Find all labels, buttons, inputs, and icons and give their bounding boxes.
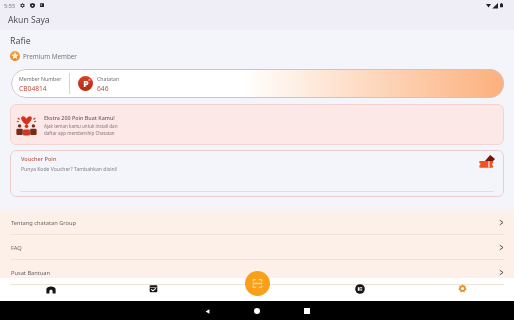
button[interactable]: Pusat Bantuan: [0, 260, 514, 285]
button[interactable]: Settings: [411, 278, 514, 301]
staticText: 5:55: [4, 2, 16, 10]
button[interactable]: Voucher Poin: [10, 150, 504, 197]
staticText: daftar app membership Chatatan: [44, 130, 115, 136]
staticText: Chatatan: [97, 75, 120, 82]
staticText: Premium Member: [23, 52, 77, 61]
staticText: 646: [97, 84, 109, 93]
button[interactable]: Home: [251, 305, 263, 317]
button[interactable]: Back: [201, 305, 213, 317]
button[interactable]: News: [308, 278, 411, 301]
button[interactable]: FAQ: [0, 235, 514, 260]
staticText: Rafie: [10, 35, 31, 47]
button[interactable]: Premium Member: [10, 51, 77, 61]
staticText: CB04814: [19, 84, 47, 93]
staticText: Punya Kode Voucher? Tambahkan disini!: [21, 166, 118, 173]
button[interactable]: Member Number: [11, 69, 504, 98]
staticText: Ajak teman kamu untuk install dan: [44, 123, 118, 129]
button[interactable]: Recent apps: [301, 305, 313, 317]
staticText: Ekstra 200 Poin Buat Kamu!: [44, 114, 115, 121]
staticText: P: [83, 78, 89, 90]
staticText: Pusat Bantuan: [11, 269, 51, 277]
staticText: Voucher Poin: [21, 155, 57, 163]
button[interactable]: Tentang chatatan Group: [0, 210, 514, 235]
button[interactable]: Home: [0, 278, 102, 301]
button[interactable]: Scan: [245, 271, 270, 296]
button[interactable]: Ekstra 200 Poin Buat Kamu!: [10, 104, 504, 145]
staticText: Tentang chatatan Group: [11, 219, 76, 227]
staticText: Akun Saya: [8, 14, 50, 26]
staticText: Member Number: [19, 75, 62, 82]
button[interactable]: Events: [102, 278, 205, 301]
staticText: FAQ: [11, 244, 22, 252]
button[interactable]: Scan: [205, 278, 308, 301]
